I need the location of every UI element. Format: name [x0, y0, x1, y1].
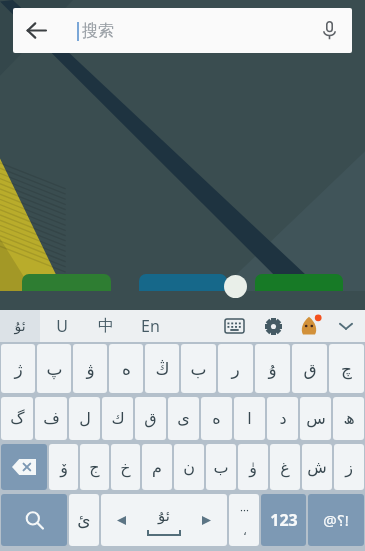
staticText: ە	[122, 359, 131, 379]
button[interactable]: Back	[13, 8, 59, 53]
staticText: ،	[243, 524, 247, 538]
button[interactable]: Voice search	[306, 8, 352, 53]
staticText: چ	[341, 359, 352, 379]
staticText: ئ	[77, 510, 91, 530]
staticText: ج	[89, 458, 100, 477]
button[interactable]: م	[142, 444, 172, 490]
button[interactable]: ا	[234, 397, 265, 440]
staticText: 中	[98, 316, 114, 336]
staticText: ى	[177, 409, 190, 428]
staticText: U	[56, 315, 68, 337]
button[interactable]: En	[128, 310, 172, 342]
button[interactable]: Space	[101, 494, 227, 546]
button[interactable]: ۆ	[49, 444, 78, 490]
button[interactable]: Settings	[255, 310, 291, 342]
button[interactable]: ئۇ	[0, 310, 40, 342]
button[interactable]: ۇ	[255, 344, 290, 393]
button[interactable]: ئ	[69, 494, 99, 546]
button[interactable]: خ	[111, 444, 140, 490]
staticText: ن	[183, 458, 195, 477]
staticText: ل	[79, 409, 91, 428]
button[interactable]: ش	[302, 444, 332, 490]
button[interactable]: ۈ	[238, 444, 268, 490]
staticText: س	[306, 409, 326, 428]
button[interactable]: ر	[218, 344, 253, 393]
button[interactable]: ل	[69, 397, 100, 440]
button[interactable]: Hide keyboard	[327, 310, 365, 342]
staticText: ھ	[343, 409, 355, 428]
button[interactable]: ك	[102, 397, 133, 440]
staticText: ئۇ	[158, 507, 170, 524]
button[interactable]: پ	[37, 344, 71, 393]
button[interactable]: ز	[334, 444, 364, 490]
button[interactable]: Emoji	[291, 310, 327, 342]
button[interactable]: ژ	[1, 344, 35, 393]
button[interactable]: گ	[1, 397, 33, 440]
button[interactable]: ۋ	[73, 344, 107, 393]
staticText: ق	[144, 409, 157, 428]
button[interactable]: App icon	[139, 274, 227, 291]
staticText: گ	[10, 409, 25, 428]
button[interactable]: ڭ	[145, 344, 179, 393]
staticText: ق	[303, 359, 317, 379]
staticText: ئۇ	[14, 318, 26, 334]
button[interactable]: ب	[181, 344, 216, 393]
button[interactable]: س	[300, 397, 331, 440]
staticText: ب	[213, 458, 229, 477]
button[interactable]: ە	[201, 397, 232, 440]
button[interactable]: ق	[135, 397, 166, 440]
button[interactable]: App icon	[255, 274, 343, 291]
button[interactable]: ى	[168, 397, 199, 440]
staticText: 搜索	[82, 21, 114, 41]
button[interactable]: د	[267, 397, 298, 440]
button[interactable]: چ	[329, 344, 364, 393]
button[interactable]: Backspace	[1, 444, 47, 490]
button[interactable]: ف	[35, 397, 67, 440]
staticText: پ	[46, 359, 63, 379]
staticText: ر	[231, 359, 240, 379]
button[interactable]: U	[40, 310, 84, 342]
staticText: غ	[280, 458, 290, 477]
staticText: 123	[270, 509, 298, 531]
staticText: ش	[307, 458, 327, 477]
button[interactable]: @؟!	[308, 494, 364, 546]
staticText: ب	[190, 359, 207, 379]
button[interactable]: ھ	[333, 397, 364, 440]
button[interactable]: ق	[292, 344, 327, 393]
button[interactable]: ب	[206, 444, 236, 490]
staticText: ڭ	[155, 359, 170, 379]
button[interactable]: App icon	[22, 274, 111, 291]
staticText: En	[141, 315, 160, 337]
button[interactable]: 123	[261, 494, 306, 546]
button[interactable]: ج	[80, 444, 109, 490]
button[interactable]: ن	[174, 444, 204, 490]
button[interactable]: غ	[270, 444, 300, 490]
staticText: ز	[345, 458, 353, 477]
staticText: ۆ	[60, 458, 68, 477]
staticText: ك	[111, 409, 125, 428]
button[interactable]: 中	[84, 310, 128, 342]
staticText: @؟!	[323, 510, 349, 530]
staticText: ف	[43, 409, 60, 428]
staticText: ۈ	[249, 458, 257, 477]
staticText: د	[279, 409, 287, 428]
staticText: م	[152, 458, 162, 477]
staticText: ···	[240, 502, 249, 517]
staticText: خ	[120, 458, 131, 477]
staticText: ە	[212, 409, 221, 428]
button[interactable]: Keyboard layout	[213, 310, 255, 342]
staticText: ژ	[14, 359, 23, 379]
staticText: ۇ	[268, 359, 277, 379]
button[interactable]: Punctuation	[229, 494, 259, 546]
staticText: ۋ	[86, 359, 95, 379]
staticText: ا	[247, 409, 252, 428]
button[interactable]: Search	[1, 494, 67, 546]
button[interactable]: ە	[109, 344, 143, 393]
